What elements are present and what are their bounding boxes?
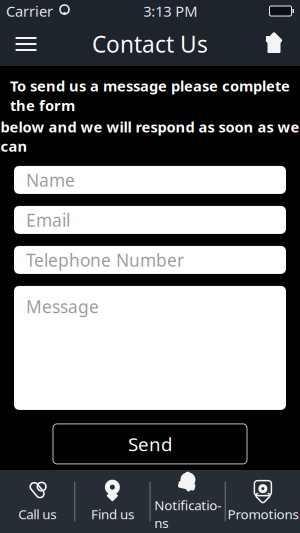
staticText: below and we will respond as soon as we … xyxy=(0,117,299,156)
button[interactable]: Home xyxy=(252,22,296,66)
staticText: Carrier xyxy=(6,1,53,21)
staticText: 3:13 PM xyxy=(143,1,197,21)
button[interactable]: Send xyxy=(53,424,247,464)
button[interactable]: Promotions xyxy=(226,471,300,532)
staticText: Find us xyxy=(91,505,134,523)
button[interactable]: Menu xyxy=(4,22,48,66)
button[interactable]: Telephone Number xyxy=(14,246,286,274)
button[interactable]: Message xyxy=(14,286,286,410)
staticText: Name xyxy=(26,168,75,191)
button[interactable]: Email xyxy=(14,206,286,234)
button[interactable]: Call us xyxy=(0,471,74,532)
button[interactable]: Notifications xyxy=(150,462,225,533)
staticText: Call us xyxy=(18,505,56,523)
button[interactable]: Name xyxy=(14,166,286,194)
staticText: Message xyxy=(26,295,99,318)
staticText: Telephone Number xyxy=(26,248,184,271)
staticText: Send xyxy=(128,431,172,456)
staticText: Notifications xyxy=(154,496,221,532)
staticText: To send us a message please complete the… xyxy=(10,76,290,115)
staticText: Email xyxy=(26,208,70,231)
staticText: Contact Us xyxy=(92,29,208,59)
button[interactable]: Find us xyxy=(75,471,149,532)
staticText: Promotions xyxy=(227,505,298,523)
